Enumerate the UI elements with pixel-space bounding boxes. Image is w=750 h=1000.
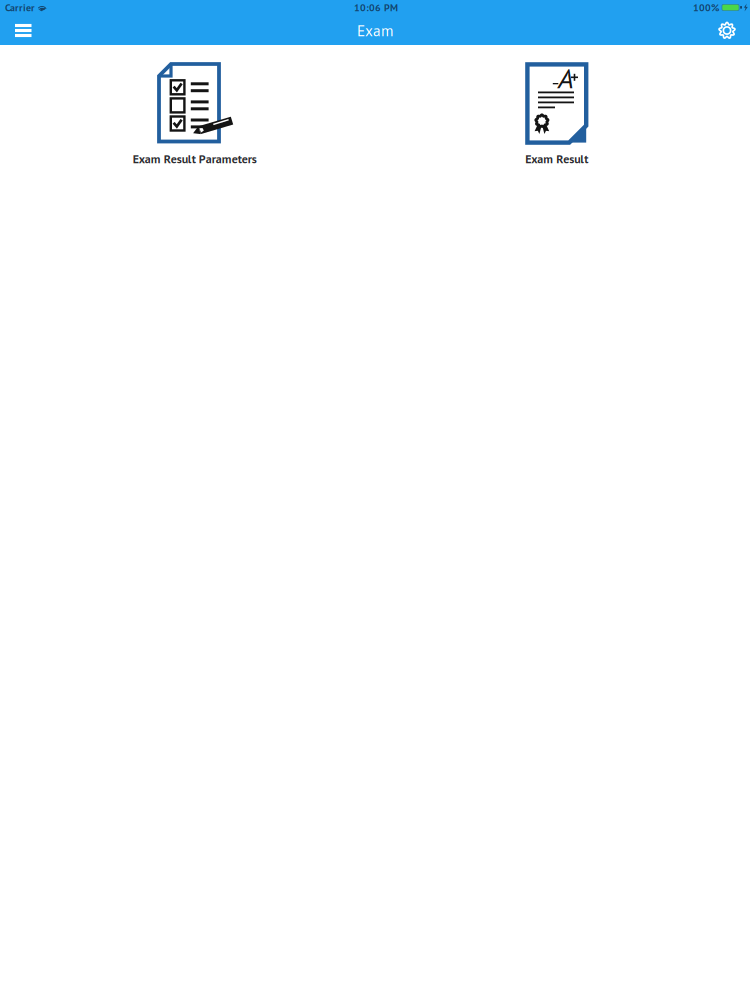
staticText: Exam Result bbox=[525, 151, 588, 166]
staticText: A bbox=[558, 60, 574, 96]
staticText: Carrier bbox=[5, 1, 35, 14]
button[interactable]: Settings bbox=[706, 19, 750, 44]
button[interactable]: A bbox=[376, 62, 738, 182]
staticText: Exam bbox=[357, 21, 393, 40]
staticText: Exam Result Parameters bbox=[133, 151, 257, 166]
button[interactable]: Exam Result Parameters bbox=[14, 62, 376, 182]
staticText: 10:06 PM bbox=[354, 1, 398, 14]
button[interactable]: Menu bbox=[0, 18, 46, 45]
staticText: 100% bbox=[693, 1, 719, 14]
